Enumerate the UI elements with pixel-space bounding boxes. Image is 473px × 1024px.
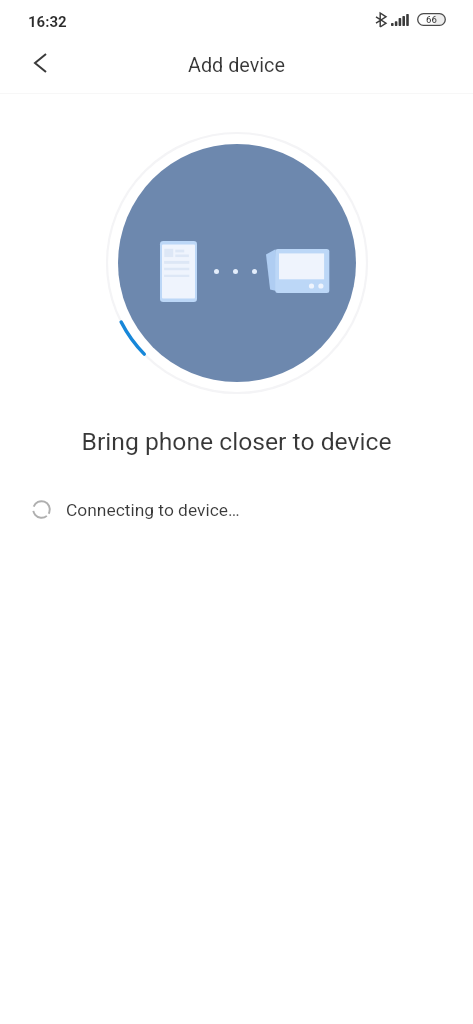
staticText: Connecting to device… <box>66 500 240 520</box>
staticText: Bring phone closer to device <box>0 427 473 456</box>
staticText: 16:32 <box>28 13 67 31</box>
staticText: 66 <box>426 14 437 25</box>
button[interactable]: Back <box>16 39 64 87</box>
staticText: Add device <box>188 54 285 77</box>
